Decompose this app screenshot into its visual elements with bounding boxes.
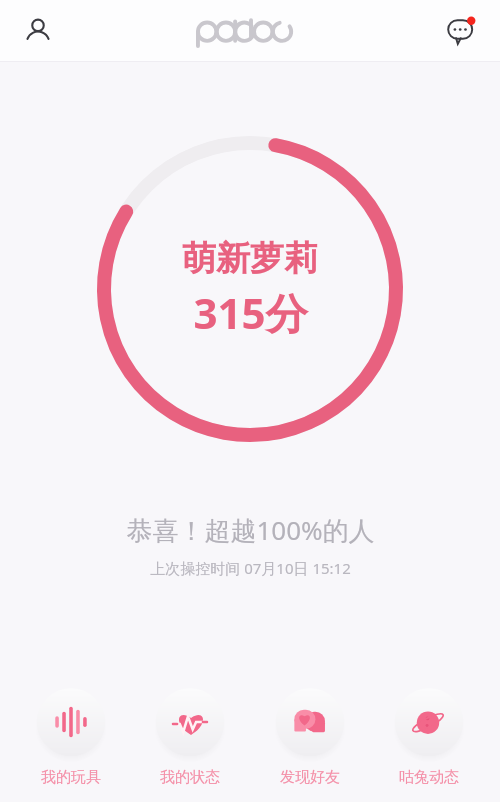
staticText: 萌新萝莉 xyxy=(182,237,318,280)
staticText: 咕兔动态 xyxy=(399,768,459,787)
staticText: 我的玩具 xyxy=(41,768,101,787)
button[interactable]: Find friends xyxy=(254,682,366,787)
staticText: 315分 xyxy=(193,284,308,341)
staticText: 上次操控时间 07月10日 15:12 xyxy=(150,558,351,578)
button[interactable]: My status xyxy=(134,682,246,787)
staticText: 我的状态 xyxy=(160,768,220,787)
button[interactable]: Feed xyxy=(373,682,485,787)
staticText: 发现好友 xyxy=(280,768,340,787)
button[interactable]: Messages xyxy=(438,7,486,55)
button[interactable]: My toys xyxy=(15,682,127,787)
button[interactable]: Profile xyxy=(14,7,62,55)
staticText: 恭喜！超越100%的人 xyxy=(126,512,375,548)
